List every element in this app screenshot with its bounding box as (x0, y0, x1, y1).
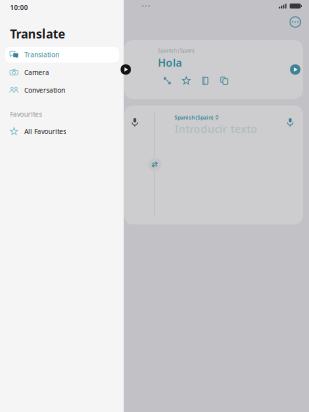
staticText: Spanish (Spain) (174, 114, 213, 121)
button[interactable]: Translation (0, 47, 124, 62)
button[interactable]: More options (285, 12, 305, 32)
staticText: Hola (158, 56, 182, 70)
staticText: Spanish (Spain) (158, 47, 195, 54)
button[interactable]: Copy translation (215, 75, 234, 87)
button[interactable]: Camera (0, 65, 124, 80)
staticText: Translation (24, 50, 59, 59)
button[interactable]: Play source text (116, 40, 136, 99)
staticText: Translate (10, 26, 65, 42)
button[interactable]: Expand translation (158, 75, 177, 87)
button[interactable]: Conversation (0, 82, 124, 98)
button[interactable]: Play translation (285, 40, 305, 99)
staticText: Conversation (24, 86, 65, 95)
staticText: 10:00 (10, 3, 28, 12)
staticText: Camera (24, 68, 49, 77)
button[interactable]: Dictate translation (283, 112, 297, 132)
button[interactable]: Add to favourites (177, 75, 196, 87)
button[interactable]: Dictate source (128, 112, 142, 132)
staticText: All Favourites (24, 127, 66, 136)
button[interactable]: All Favourites (0, 124, 124, 139)
staticText: Introducir texto (174, 122, 257, 136)
button[interactable]: Swap languages (148, 158, 161, 171)
button[interactable]: Open dictionary (196, 75, 215, 87)
staticText: Favourites (10, 110, 42, 119)
